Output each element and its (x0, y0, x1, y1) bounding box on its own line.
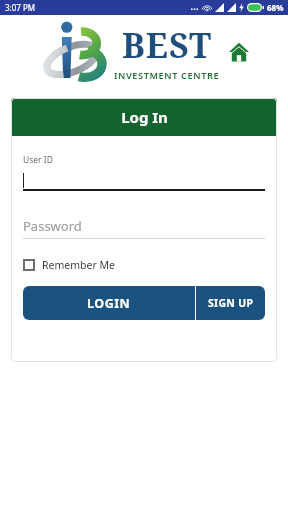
button[interactable]: LOGIN (23, 286, 195, 320)
staticText: 68% (267, 2, 284, 13)
staticText: Log In (121, 107, 168, 127)
staticText: Password (23, 217, 82, 235)
button[interactable]: User ID (23, 154, 265, 191)
button[interactable]: Home (226, 39, 252, 65)
staticText: SIGN UP (208, 296, 254, 310)
staticText: 3:07 PM (5, 2, 36, 13)
staticText: BEST (122, 22, 213, 68)
button[interactable]: SIGN UP (196, 286, 265, 320)
staticText: User ID (23, 154, 53, 166)
staticText: Remember Me (42, 258, 115, 272)
button[interactable]: Password (23, 216, 265, 239)
staticText: INVESTMENT CENTRE (114, 69, 220, 82)
staticText: LOGIN (87, 295, 131, 312)
button[interactable]: Remember Me (23, 256, 115, 274)
